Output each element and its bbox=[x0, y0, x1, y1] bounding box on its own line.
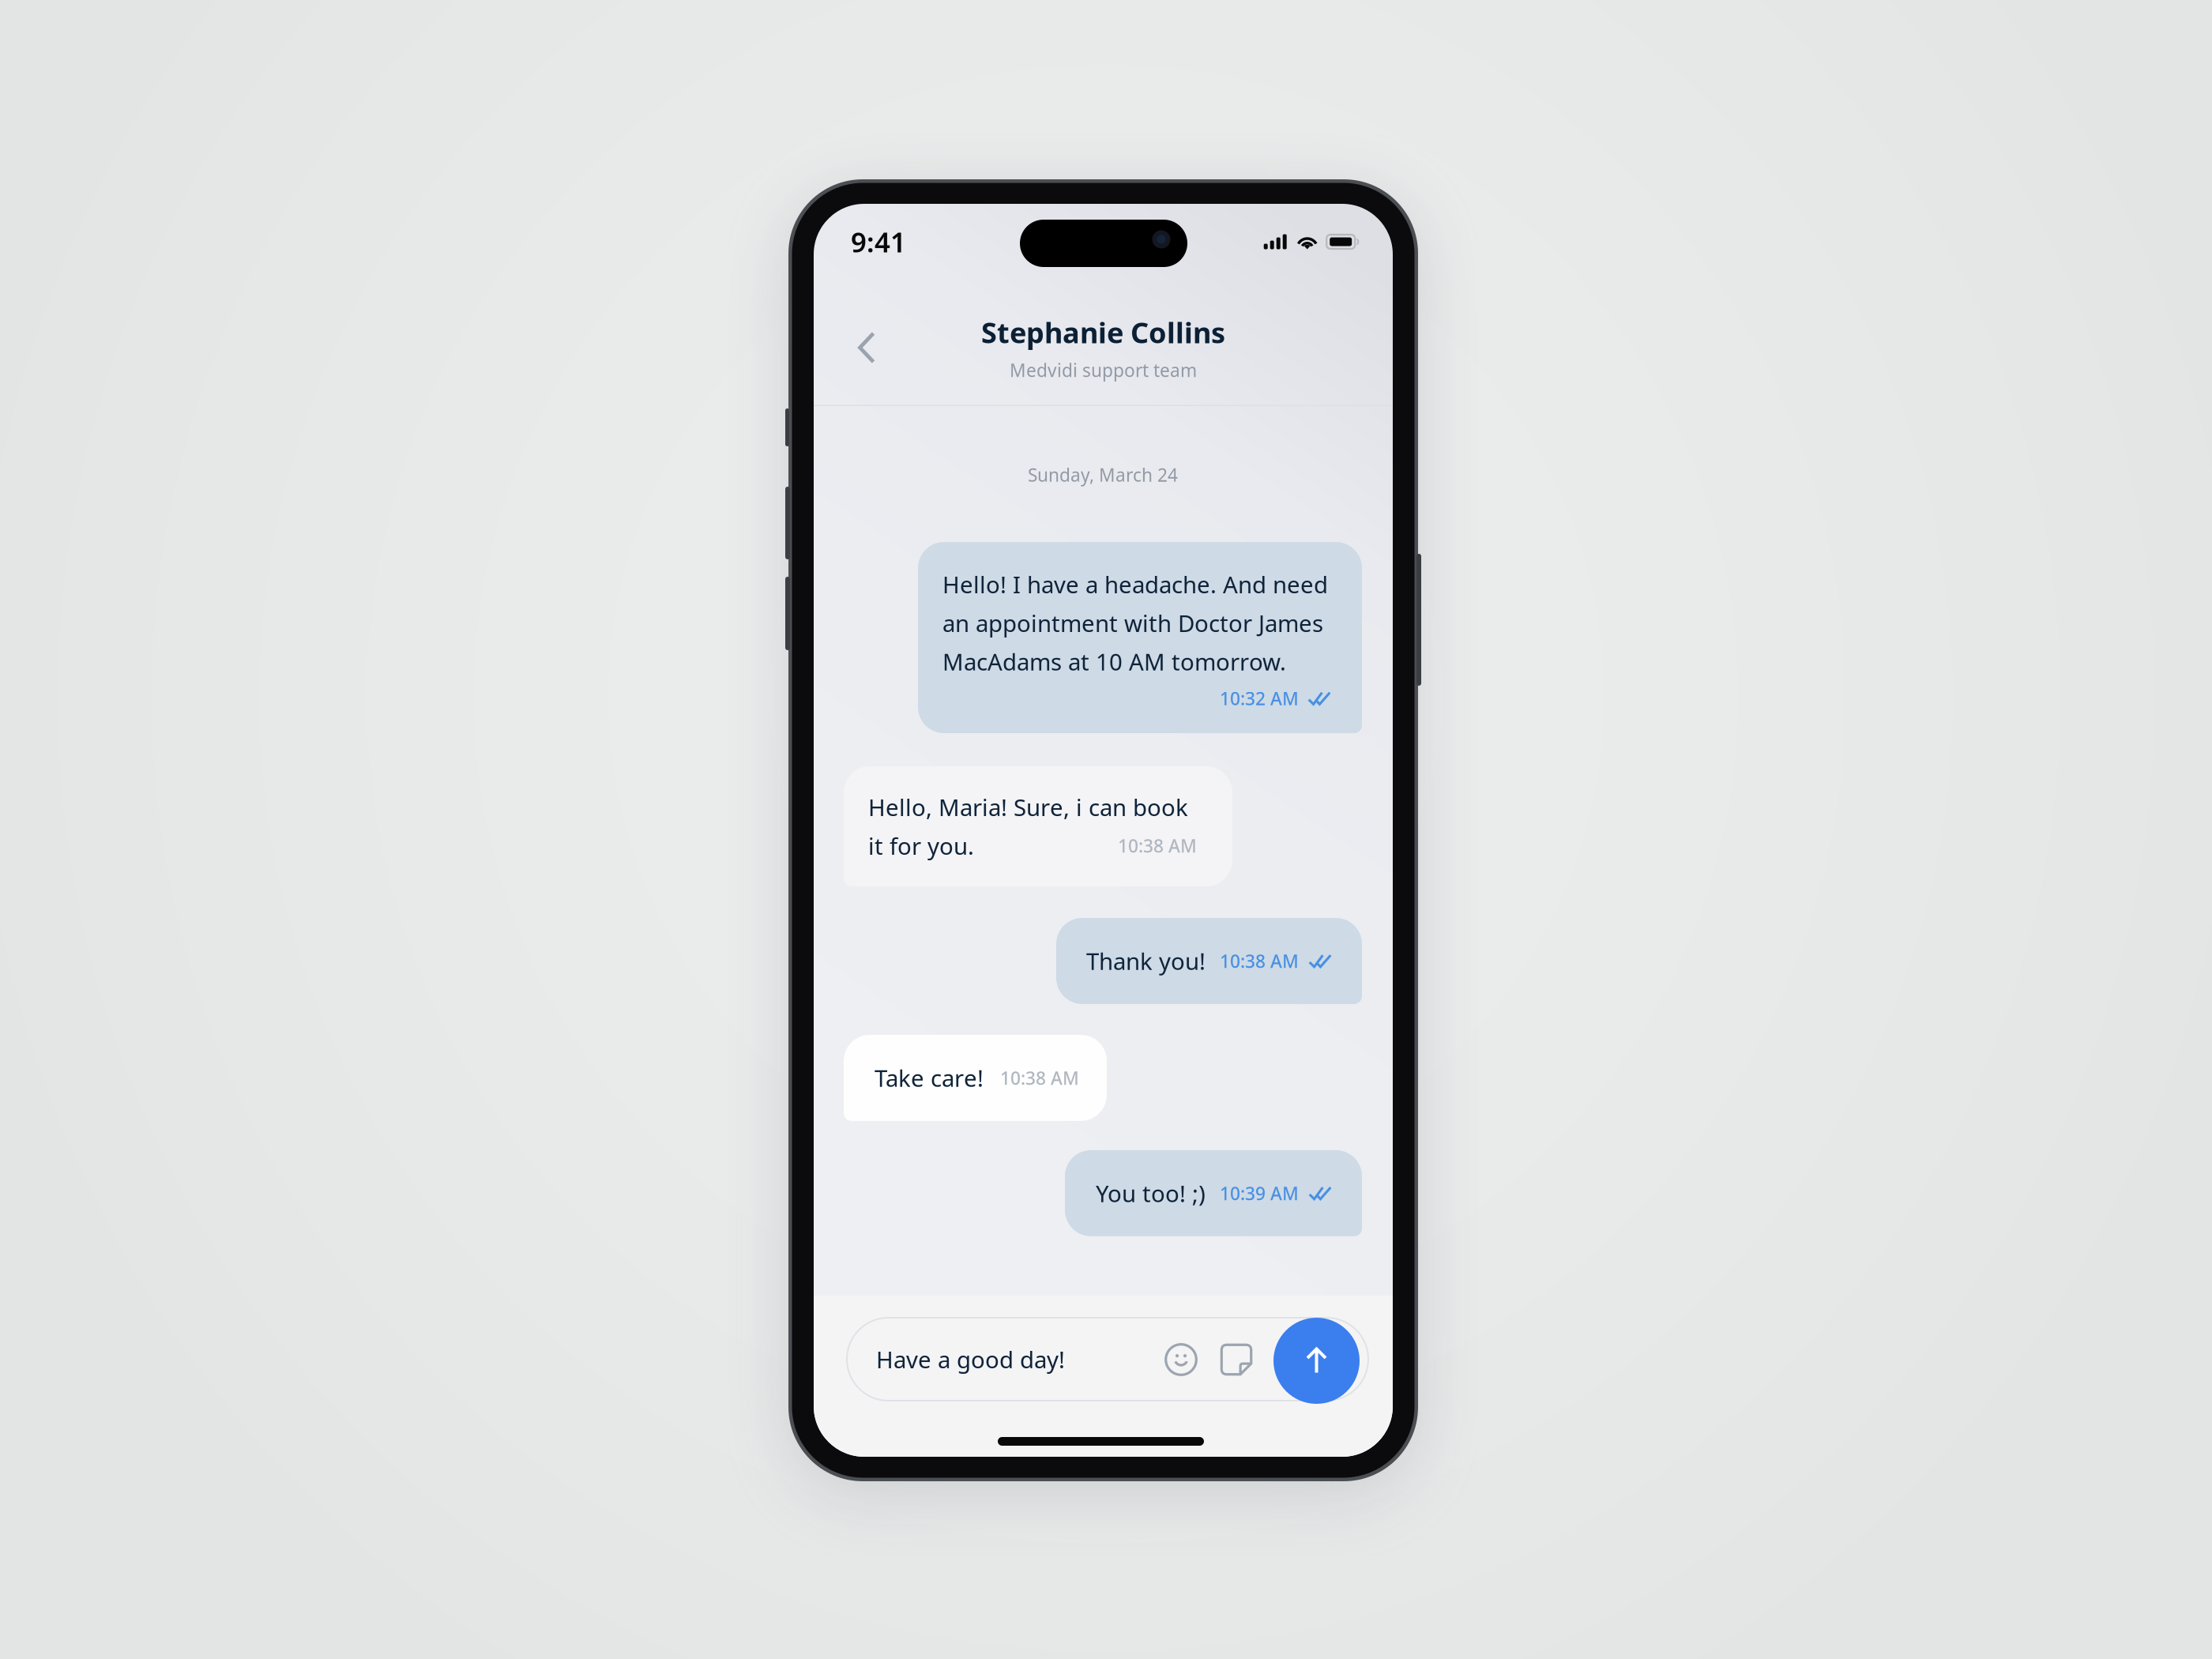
staticText: Hello, Maria! Sure, i can book bbox=[868, 792, 1188, 822]
button[interactable]: Back bbox=[841, 322, 892, 373]
staticText: 10:39 AM bbox=[1220, 1181, 1299, 1205]
staticText: Have a good day! bbox=[876, 1344, 1065, 1375]
staticText: 10:38 AM bbox=[1220, 949, 1299, 973]
button[interactable]: Stickers bbox=[1211, 1326, 1262, 1394]
staticText: Hello! I have a headache. And need bbox=[942, 569, 1328, 600]
button[interactable]: Emoji bbox=[1156, 1326, 1206, 1394]
staticText: Stephanie Collins bbox=[981, 313, 1225, 351]
staticText: 10:38 AM bbox=[1118, 834, 1197, 858]
staticText: MacAdams at 10 AM tomorrow. bbox=[942, 646, 1286, 677]
staticText: Take care! bbox=[875, 1062, 984, 1093]
staticText: Thank you! bbox=[1086, 946, 1206, 976]
staticText: Sunday, March 24 bbox=[1028, 463, 1178, 487]
staticText: 10:32 AM bbox=[1220, 687, 1299, 710]
staticText: You too! ;) bbox=[1096, 1178, 1206, 1209]
staticText: it for you. bbox=[868, 830, 974, 861]
staticText: 9:41 bbox=[851, 224, 906, 260]
staticText: 10:38 AM bbox=[1000, 1066, 1079, 1090]
staticText: an appointment with Doctor James bbox=[942, 608, 1323, 638]
button[interactable]: Send bbox=[1273, 1318, 1360, 1404]
staticText: Medvidi support team bbox=[1010, 358, 1197, 382]
